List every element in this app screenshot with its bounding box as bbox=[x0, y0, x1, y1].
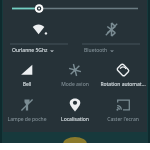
staticText: Lampe de poche bbox=[4, 116, 50, 123]
staticText: Bluetooth bbox=[84, 47, 108, 54]
button[interactable]: Localisation bbox=[51, 93, 99, 123]
button[interactable]: Bluetooth bbox=[75, 17, 147, 54]
button[interactable]: Rotation automatique bbox=[99, 58, 147, 88]
staticText: Rotation automatique bbox=[100, 81, 146, 88]
staticText: Localisation bbox=[52, 116, 98, 123]
button[interactable]: Ourlanne 5Ghz bbox=[3, 17, 75, 54]
button[interactable]: Mode avion bbox=[51, 58, 99, 88]
staticText: Ourlanne 5Ghz bbox=[12, 47, 48, 54]
button[interactable]: Caster l'ecran bbox=[99, 93, 147, 123]
button[interactable]: Bell bbox=[3, 58, 51, 88]
staticText: Bell bbox=[4, 81, 50, 88]
button[interactable]: Brightness bbox=[3, 0, 147, 17]
button[interactable]: Lampe de poche bbox=[3, 93, 51, 123]
staticText: Caster l'ecran bbox=[100, 116, 146, 123]
staticText: Mode avion bbox=[52, 81, 98, 88]
